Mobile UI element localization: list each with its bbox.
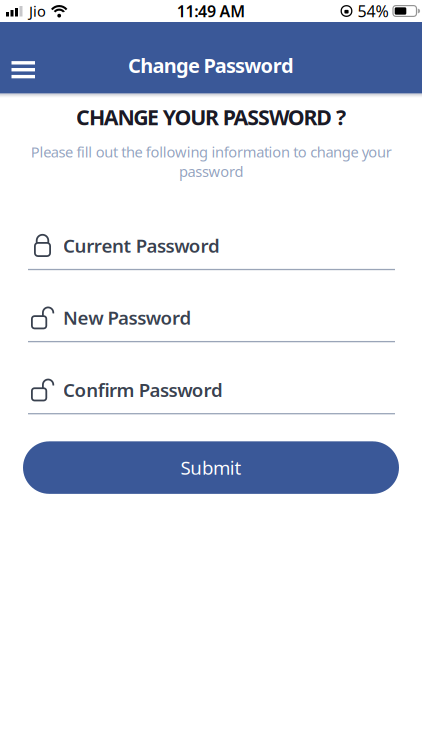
staticText: Please fill out the following informatio… bbox=[31, 142, 391, 181]
staticText: New Password bbox=[63, 305, 192, 330]
staticText: Confirm Password bbox=[63, 377, 223, 402]
staticText: Change Password bbox=[128, 52, 294, 78]
staticText: Current Password bbox=[63, 233, 220, 258]
button[interactable]: Current Password bbox=[0, 233, 422, 270]
button[interactable]: New Password bbox=[0, 305, 422, 342]
staticText: Submit bbox=[180, 455, 241, 480]
staticText: 11:49 AM bbox=[177, 0, 245, 22]
button[interactable]: Submit bbox=[0, 441, 422, 494]
staticText: CHANGE YOUR PASSWORD ? bbox=[76, 103, 346, 131]
button[interactable]: Menu bbox=[0, 53, 35, 86]
button[interactable]: Confirm Password bbox=[0, 377, 422, 414]
staticText: Jio bbox=[29, 1, 46, 21]
staticText: 54% bbox=[357, 0, 388, 22]
